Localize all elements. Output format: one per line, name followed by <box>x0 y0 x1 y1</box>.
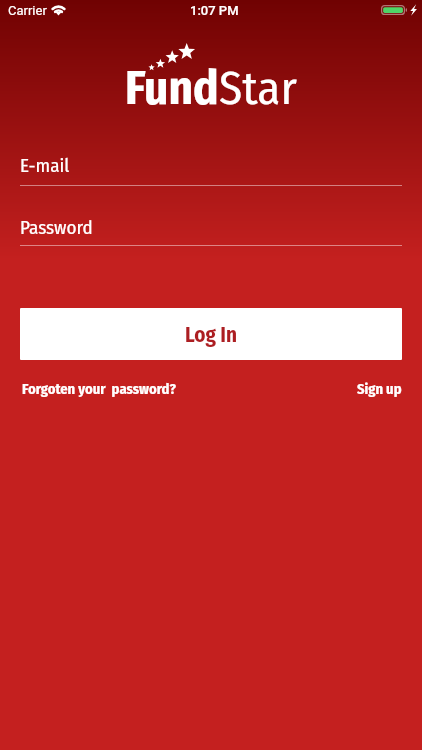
button[interactable]: Sign up <box>357 380 402 397</box>
staticText: Carrier <box>8 3 47 18</box>
button[interactable]: Log In <box>20 308 402 360</box>
button[interactable]: Password <box>20 216 402 246</box>
button[interactable]: Forgoten your password? <box>22 380 176 397</box>
other: Wi-Fi signal <box>50 4 67 16</box>
button[interactable]: E-mail <box>20 154 402 186</box>
staticText: Password <box>20 216 93 239</box>
other: Battery charging <box>381 5 407 15</box>
staticText: Star <box>219 60 297 116</box>
staticText: E-mail <box>20 154 70 177</box>
staticText: 1:07 PM <box>190 3 239 18</box>
staticText: Fund <box>125 60 219 116</box>
staticText: Log In <box>185 322 238 347</box>
